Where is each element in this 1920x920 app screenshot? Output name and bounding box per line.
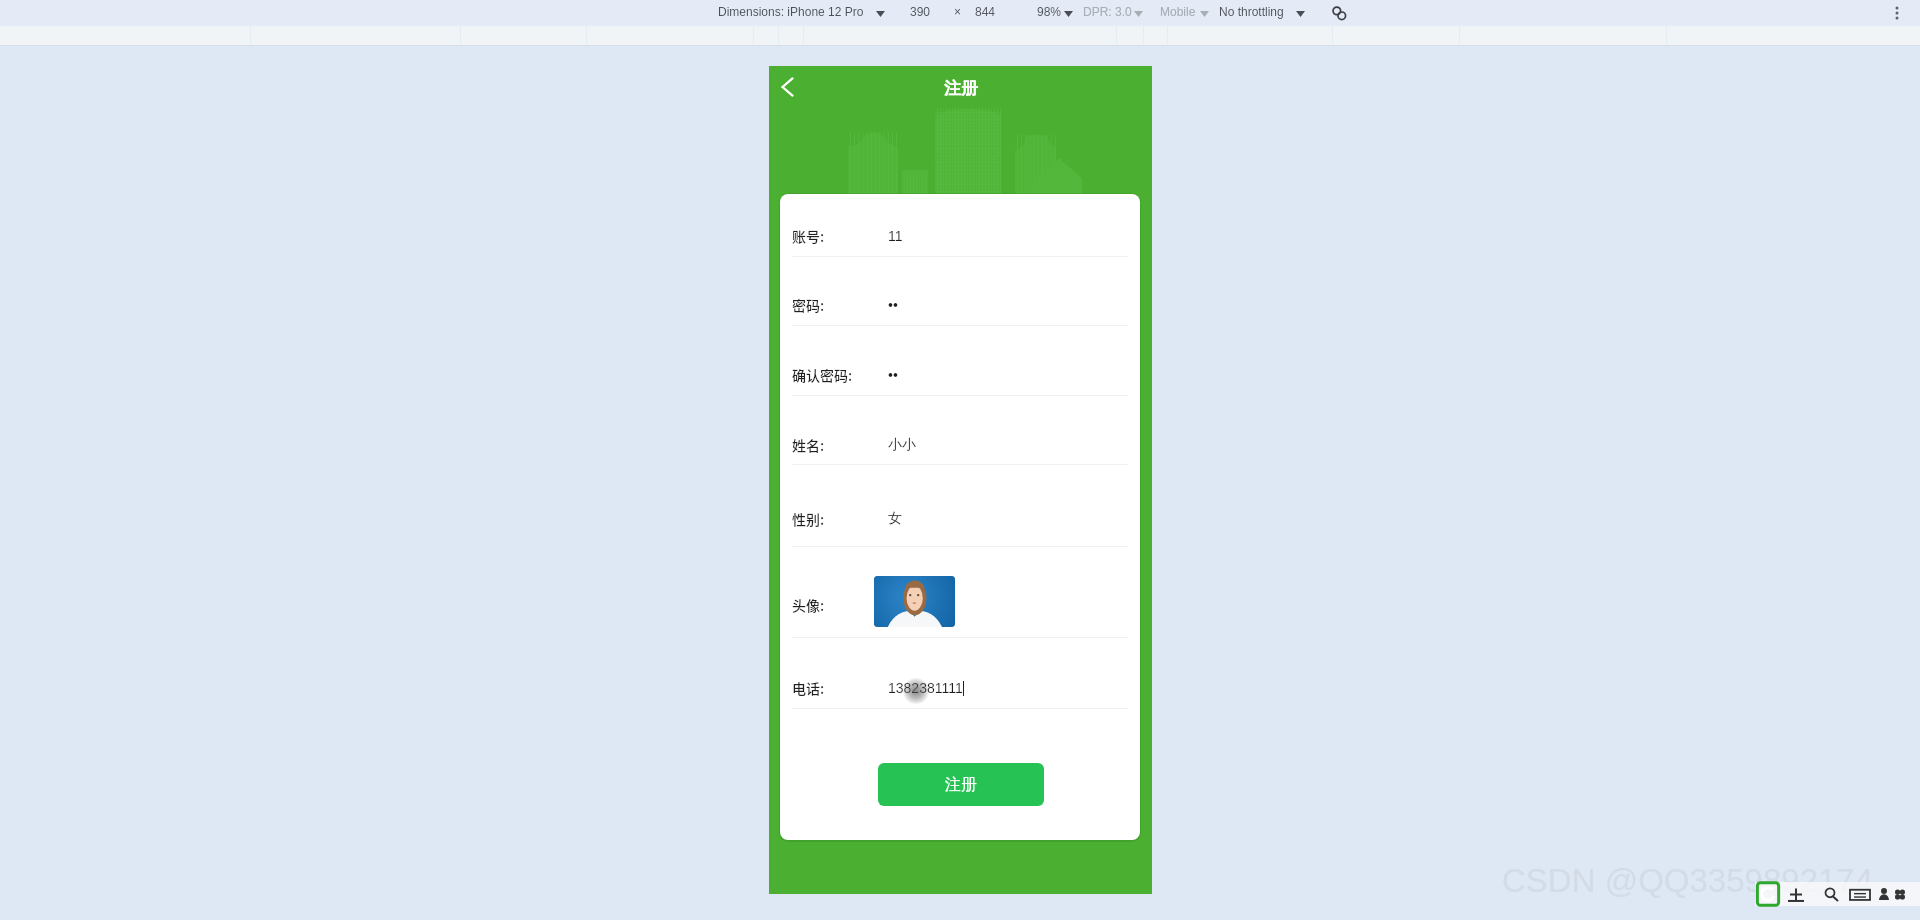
staticText: 性别: <box>792 509 825 529</box>
staticText: 确认密码: <box>792 365 853 385</box>
button[interactable]: Back <box>769 66 809 110</box>
staticText: 电话: <box>792 678 825 698</box>
button[interactable]: Avatar photo <box>874 576 955 627</box>
staticText: 头像: <box>792 595 825 615</box>
button[interactable]: 密码: <box>780 288 1140 322</box>
staticText: Mobile <box>1160 5 1196 18</box>
staticText: 11 <box>888 228 903 244</box>
staticText: 844 <box>975 5 996 18</box>
staticText: 1382381111 <box>888 680 963 696</box>
button[interactable]: 账号: <box>780 219 1140 253</box>
staticText: 密码: <box>792 295 825 315</box>
staticText: 账号: <box>792 226 825 246</box>
button[interactable]: 姓名: <box>780 428 1140 462</box>
staticText: DPR: 3.0 <box>1083 5 1132 18</box>
staticText: 390 <box>910 5 931 18</box>
button[interactable]: 性别: <box>780 502 1140 536</box>
staticText: No throttling <box>1219 5 1284 18</box>
staticText: Dimensions: iPhone 12 Pro <box>718 5 864 18</box>
staticText: •• <box>888 297 898 313</box>
button[interactable]: 注册 <box>878 763 1044 806</box>
staticText: 女 <box>888 510 902 528</box>
button[interactable]: 电话: <box>780 671 1140 705</box>
staticText: •• <box>888 367 898 383</box>
staticText: 注册 <box>945 775 977 795</box>
button[interactable]: 确认密码: <box>780 358 1140 392</box>
staticText: CSDN @QQ3359892174 <box>1502 862 1874 899</box>
staticText: 姓名: <box>792 435 825 455</box>
staticText: × <box>954 5 962 18</box>
staticText: 98% <box>1037 5 1062 18</box>
staticText: 小小 <box>888 436 916 454</box>
button[interactable]: 头像: <box>780 588 1140 622</box>
staticText: 注册 <box>944 78 978 99</box>
